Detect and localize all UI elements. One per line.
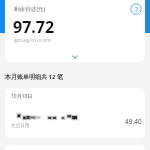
staticText: 97.72 [13,16,55,38]
staticText: 生活日用 [11,123,30,129]
button[interactable]: Expand [68,52,82,62]
staticText: ? [135,5,138,14]
staticText: 最后还款日11月30日 [14,38,52,43]
staticText: 剩余待还(元) [14,5,46,13]
staticText: 10月10日 [11,93,33,100]
staticText: 本月账单明细共 12 笔 [5,73,63,81]
button[interactable]: 10月10日 [5,88,145,138]
button[interactable]: Help [130,3,142,15]
staticText: 49.40 [125,117,142,126]
button[interactable]: 剩余待还(元) [5,0,145,62]
